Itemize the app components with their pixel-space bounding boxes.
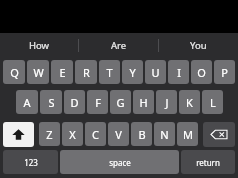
- staticText: P: [221, 65, 228, 80]
- staticText: R: [83, 65, 90, 80]
- button[interactable]: H: [133, 90, 154, 114]
- staticText: return: [196, 157, 220, 168]
- button[interactable]: E: [51, 60, 73, 84]
- staticText: N: [160, 127, 169, 142]
- staticText: Y: [129, 65, 136, 80]
- button[interactable]: You: [159, 33, 238, 58]
- button[interactable]: F: [87, 90, 108, 114]
- button[interactable]: N: [154, 122, 175, 146]
- staticText: S: [48, 95, 55, 110]
- staticText: space: [109, 157, 131, 168]
- staticText: B: [138, 127, 146, 142]
- button[interactable]: Backspace: [203, 122, 235, 147]
- staticText: You: [190, 39, 207, 52]
- button[interactable]: return: [181, 150, 235, 174]
- staticText: M: [183, 127, 193, 142]
- staticText: T: [106, 65, 113, 80]
- staticText: O: [197, 65, 206, 80]
- staticText: G: [116, 95, 125, 110]
- button[interactable]: Shift: [3, 122, 34, 147]
- staticText: A: [23, 95, 31, 110]
- button[interactable]: U: [145, 60, 166, 84]
- button[interactable]: Are: [79, 33, 158, 58]
- staticText: Are: [111, 39, 127, 52]
- button[interactable]: C: [85, 122, 106, 146]
- button[interactable]: G: [110, 90, 131, 114]
- button[interactable]: T: [99, 60, 120, 84]
- button[interactable]: B: [131, 122, 152, 146]
- button[interactable]: R: [75, 60, 97, 84]
- button[interactable]: J: [156, 90, 177, 114]
- button[interactable]: S: [40, 90, 62, 114]
- button[interactable]: P: [214, 60, 235, 84]
- button[interactable]: I: [168, 60, 189, 84]
- button[interactable]: 123: [3, 150, 58, 174]
- staticText: X: [69, 127, 76, 142]
- staticText: L: [210, 95, 216, 110]
- staticText: How: [29, 39, 50, 52]
- button[interactable]: Y: [122, 60, 143, 84]
- staticText: W: [33, 65, 44, 80]
- button[interactable]: Z: [39, 122, 60, 146]
- button[interactable]: Q: [3, 60, 25, 84]
- staticText: U: [151, 65, 160, 80]
- staticText: J: [165, 95, 169, 110]
- staticText: H: [139, 95, 148, 110]
- staticText: K: [186, 95, 193, 110]
- staticText: F: [95, 95, 101, 110]
- staticText: 123: [24, 157, 38, 168]
- button[interactable]: K: [179, 90, 200, 114]
- button[interactable]: M: [177, 122, 198, 146]
- button[interactable]: How: [0, 33, 78, 58]
- staticText: V: [115, 127, 122, 142]
- staticText: Q: [10, 65, 19, 80]
- staticText: C: [92, 127, 99, 142]
- button[interactable]: space: [60, 150, 179, 174]
- button[interactable]: A: [16, 90, 38, 114]
- button[interactable]: V: [108, 122, 129, 146]
- button[interactable]: L: [202, 90, 223, 114]
- button[interactable]: D: [64, 90, 85, 114]
- button[interactable]: O: [191, 60, 212, 84]
- button[interactable]: W: [27, 60, 49, 84]
- button[interactable]: X: [62, 122, 83, 146]
- staticText: D: [70, 95, 79, 110]
- staticText: I: [177, 65, 181, 80]
- staticText: Z: [46, 127, 53, 142]
- staticText: E: [59, 65, 66, 80]
